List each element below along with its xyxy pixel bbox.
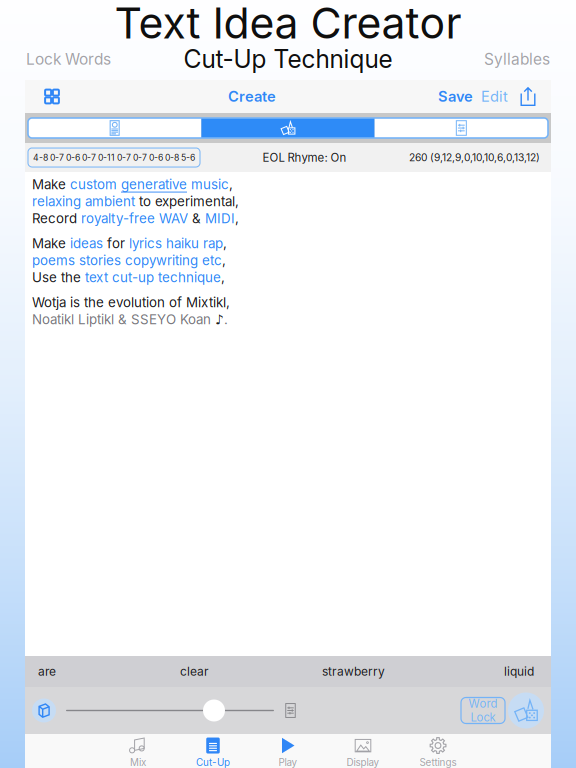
button[interactable]: Display: [325, 734, 400, 768]
staticText: Display: [346, 756, 379, 768]
staticText: EOL Rhyme: On: [262, 151, 346, 164]
staticText: poems stories copywriting etc,: [32, 252, 226, 268]
button[interactable]: Save: [438, 81, 473, 112]
button[interactable]: Share: [519, 81, 537, 112]
button[interactable]: Text mode: [28, 118, 201, 138]
button[interactable]: Cut-Up: [175, 734, 250, 768]
staticText: clear: [180, 664, 209, 679]
staticText: 4-8 0-7 0-6 0-7 0-11 0-7 0-7 0-6 0-8 5-6: [33, 152, 195, 163]
button[interactable]: Cut-up mode: [201, 118, 375, 138]
button[interactable]: Layout grid: [38, 81, 66, 112]
staticText: Record royalty-free WAV & MIDI,: [32, 210, 239, 226]
button[interactable]: Cube: [32, 687, 56, 734]
staticText: are: [38, 664, 56, 679]
button[interactable]: Settings: [400, 734, 475, 768]
staticText: relaxing ambient to experimental,: [32, 193, 239, 209]
button[interactable]: Mix: [100, 734, 175, 768]
staticText: Text Idea Creator: [114, 0, 461, 49]
staticText: Word: [468, 697, 497, 710]
button[interactable]: Mixer mode: [375, 118, 548, 138]
staticText: Syllables: [484, 50, 550, 68]
button[interactable]: Play: [250, 734, 325, 768]
staticText: Save: [438, 88, 473, 105]
staticText: 260 (9,12,9,0,10,10,6,0,13,12): [409, 151, 540, 164]
staticText: Lock: [470, 710, 495, 724]
staticText: Play: [278, 756, 297, 768]
staticText: Cut-Up: [196, 756, 230, 768]
staticText: Create: [228, 88, 276, 105]
staticText: Edit: [481, 88, 508, 105]
staticText: Settings: [419, 756, 456, 768]
button[interactable]: are: [32, 656, 62, 687]
button[interactable]: Shuffle: [508, 687, 544, 734]
staticText: Wotja is the evolution of Mixtikl,: [32, 294, 230, 310]
button[interactable]: Create: [228, 81, 276, 112]
button[interactable]: Word: [461, 697, 505, 723]
button[interactable]: strawberry: [316, 656, 391, 687]
button[interactable]: Mixer presets: [284, 687, 297, 734]
staticText: Lock Words: [26, 50, 111, 68]
staticText: Make custom generative music,: [32, 176, 233, 192]
staticText: Use the text cut-up technique,: [32, 269, 225, 285]
button[interactable]: clear: [174, 656, 215, 687]
staticText: liquid: [504, 664, 534, 679]
button[interactable]: liquid: [498, 656, 540, 687]
staticText: Cut-Up Technique: [183, 44, 392, 74]
staticText: Mix: [130, 756, 146, 768]
staticText: strawberry: [322, 664, 385, 679]
staticText: Make ideas for lyrics haiku rap,: [32, 235, 227, 251]
button[interactable]: Edit: [481, 81, 508, 112]
staticText: Noatikl Liptikl & SSEYO Koan ♪.: [32, 311, 228, 327]
